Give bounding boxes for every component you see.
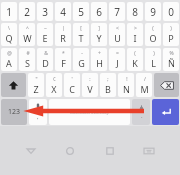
button[interactable]: Back bbox=[22, 142, 40, 160]
staticText: ( bbox=[134, 50, 136, 57]
button[interactable]: ~ bbox=[37, 23, 53, 46]
staticText: + bbox=[98, 50, 101, 57]
staticText: @ bbox=[7, 50, 12, 57]
button[interactable]: " bbox=[28, 73, 44, 97]
button[interactable]: - bbox=[73, 48, 89, 71]
button[interactable]: @ bbox=[1, 48, 17, 71]
staticText: 123 bbox=[8, 107, 21, 117]
staticText: F bbox=[61, 57, 66, 69]
staticText: 4 bbox=[60, 5, 66, 19]
staticText: - bbox=[81, 50, 83, 57]
staticText: J bbox=[116, 57, 119, 69]
staticText: ) bbox=[153, 50, 155, 57]
button[interactable]: Recents bbox=[101, 142, 119, 160]
staticText: D bbox=[42, 57, 49, 69]
staticText: ~ bbox=[44, 25, 47, 32]
button[interactable]: [ bbox=[73, 23, 89, 46]
staticText: | bbox=[62, 25, 65, 32]
staticText: 1 bbox=[6, 5, 12, 19]
staticText: A bbox=[6, 57, 12, 69]
staticText: U bbox=[114, 32, 121, 44]
button[interactable]: 5 bbox=[73, 2, 89, 21]
button[interactable]: Space bbox=[49, 99, 130, 125]
staticText: = bbox=[116, 50, 119, 57]
button[interactable]: 4 bbox=[55, 2, 71, 21]
staticText: < bbox=[116, 25, 119, 32]
staticText: > bbox=[134, 25, 137, 32]
button[interactable]: ] bbox=[91, 23, 107, 46]
button[interactable]: < bbox=[109, 23, 125, 46]
button[interactable]: / bbox=[136, 73, 152, 97]
button[interactable]: = bbox=[109, 48, 125, 71]
staticText: L bbox=[151, 57, 156, 69]
button[interactable]: > bbox=[127, 23, 143, 46]
staticText: # bbox=[26, 50, 30, 57]
staticText: O bbox=[149, 32, 157, 44]
button[interactable]: 1 bbox=[1, 2, 17, 21]
button[interactable]: 3 bbox=[37, 2, 53, 21]
button[interactable]: # bbox=[19, 48, 35, 71]
button[interactable]: 9 bbox=[145, 2, 161, 21]
staticText: : bbox=[89, 76, 91, 83]
staticText: ] bbox=[98, 25, 100, 32]
staticText: ! bbox=[126, 76, 128, 83]
button[interactable]: 123 bbox=[1, 99, 27, 125]
staticText: ' bbox=[71, 76, 73, 83]
button[interactable]: : bbox=[82, 73, 98, 97]
staticText: 6 bbox=[96, 5, 102, 19]
button[interactable]: ( bbox=[145, 23, 161, 46]
staticText: * bbox=[62, 50, 65, 57]
staticText: Microsoft SwiftKey bbox=[70, 109, 109, 115]
button[interactable]: ! bbox=[118, 73, 134, 97]
staticText: 3 bbox=[42, 5, 48, 19]
staticText: Z bbox=[33, 83, 39, 95]
button[interactable]: ; bbox=[100, 73, 116, 97]
button[interactable]: ¢ bbox=[46, 73, 62, 97]
button[interactable]: Hide keyboard bbox=[140, 142, 158, 160]
button[interactable]: % bbox=[163, 48, 179, 71]
staticText: % bbox=[169, 50, 174, 57]
staticText: S bbox=[25, 57, 30, 69]
button[interactable]: \ bbox=[1, 23, 17, 46]
staticText: ) bbox=[170, 25, 172, 32]
staticText: R bbox=[60, 32, 66, 44]
staticText: . bbox=[141, 112, 143, 120]
button[interactable]: 7 bbox=[109, 2, 125, 21]
button[interactable]: Backspace bbox=[154, 73, 179, 97]
button[interactable]: ) bbox=[145, 48, 161, 71]
button[interactable]: 2 bbox=[19, 2, 35, 21]
button[interactable]: Enter bbox=[152, 99, 179, 125]
staticText: & bbox=[44, 50, 48, 57]
button[interactable]: 0 bbox=[163, 2, 179, 21]
button[interactable]: ( bbox=[127, 48, 143, 71]
staticText: B bbox=[105, 83, 111, 95]
staticText: Y bbox=[96, 32, 102, 44]
staticText: 8 bbox=[132, 5, 138, 19]
staticText: G bbox=[78, 57, 85, 69]
button[interactable]: Shift bbox=[1, 73, 26, 97]
button[interactable]: | bbox=[55, 23, 71, 46]
button[interactable]: Settings bbox=[132, 99, 150, 125]
staticText: 2 bbox=[24, 5, 30, 19]
staticText: / bbox=[144, 76, 146, 83]
button[interactable]: ^ bbox=[19, 23, 35, 46]
staticText: Q bbox=[5, 32, 13, 44]
button[interactable]: + bbox=[91, 48, 107, 71]
staticText: K bbox=[132, 57, 138, 69]
staticText: X bbox=[51, 83, 57, 95]
button[interactable]: ) bbox=[163, 23, 179, 46]
button[interactable]: Home bbox=[61, 142, 79, 160]
staticText: 0 bbox=[168, 5, 174, 19]
button[interactable]: 8 bbox=[127, 2, 143, 21]
button[interactable]: 6 bbox=[91, 2, 107, 21]
button[interactable]: Voice input bbox=[29, 99, 47, 125]
staticText: " bbox=[35, 76, 38, 83]
button[interactable]: ' bbox=[64, 73, 80, 97]
staticText: N bbox=[123, 83, 130, 95]
staticText: C bbox=[69, 83, 75, 95]
staticText: ( bbox=[152, 25, 154, 32]
staticText: Ñ bbox=[168, 57, 175, 69]
staticText: P bbox=[168, 32, 174, 44]
button[interactable]: * bbox=[55, 48, 71, 71]
button[interactable]: & bbox=[37, 48, 53, 71]
